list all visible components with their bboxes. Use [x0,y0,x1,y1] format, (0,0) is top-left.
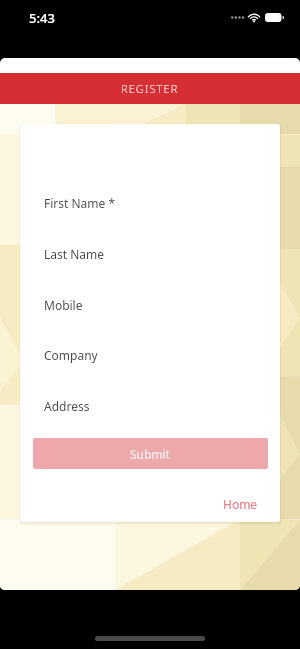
staticText: Last Name [44,246,105,262]
button[interactable]: Company [20,347,280,367]
button[interactable]: Home [223,496,258,512]
button[interactable]: Last Name [20,246,280,266]
staticText: Address [44,398,90,414]
staticText: REGISTER [121,81,179,96]
button[interactable]: REGISTER [0,73,300,104]
staticText: Company [44,347,98,363]
staticText: Submit [130,446,171,462]
staticText: 5:43 [29,9,55,27]
button[interactable]: Submit [33,438,268,469]
button[interactable]: Address [20,398,280,418]
button[interactable]: Mobile [20,297,280,317]
staticText: Home [223,496,258,512]
staticText: First Name * [44,195,116,211]
button[interactable]: First Name * [20,195,280,215]
staticText: Mobile [44,297,83,313]
